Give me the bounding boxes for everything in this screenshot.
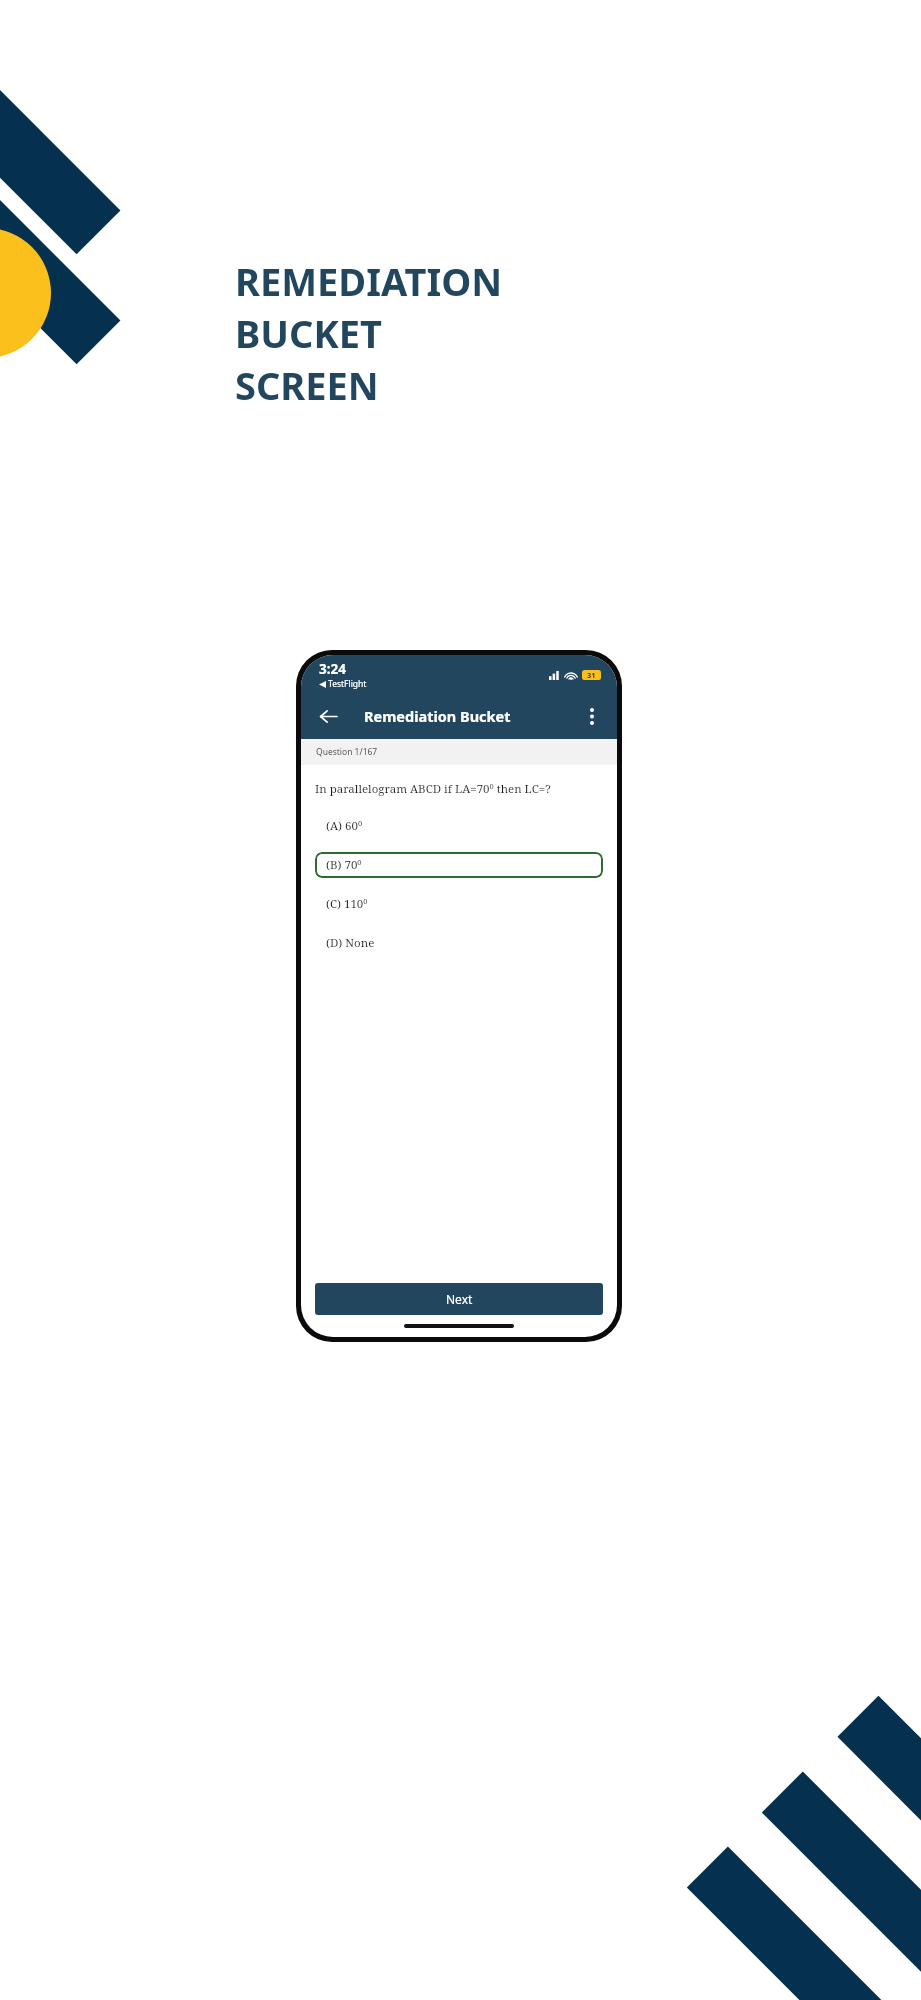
- button[interactable]: Next: [315, 1283, 603, 1315]
- button[interactable]: Back: [309, 697, 347, 735]
- staticText: BUCKET: [235, 307, 382, 359]
- staticText: (A) 600: [326, 818, 363, 834]
- staticText: REMEDIATION: [235, 255, 503, 307]
- staticText: Remediation Bucket: [364, 706, 511, 726]
- staticText: (B) 700: [326, 857, 362, 873]
- staticText: Question 1/167: [316, 746, 378, 758]
- staticText: 3:24: [319, 660, 346, 678]
- button[interactable]: (C) 1100: [315, 891, 603, 917]
- staticText: TestFlight: [328, 678, 367, 690]
- staticText: In parallelogram ABCD if LA=700 then LC=…: [315, 781, 551, 797]
- button[interactable]: (D) None: [315, 930, 603, 956]
- staticText: SCREEN: [235, 359, 379, 411]
- button[interactable]: (A) 600: [315, 813, 603, 839]
- staticText: 31: [587, 670, 596, 680]
- staticText: (C) 1100: [326, 896, 368, 912]
- button[interactable]: (B) 700: [315, 852, 603, 878]
- button[interactable]: More options: [573, 697, 611, 735]
- staticText: (D) None: [326, 935, 375, 951]
- staticText: Next: [446, 1291, 473, 1307]
